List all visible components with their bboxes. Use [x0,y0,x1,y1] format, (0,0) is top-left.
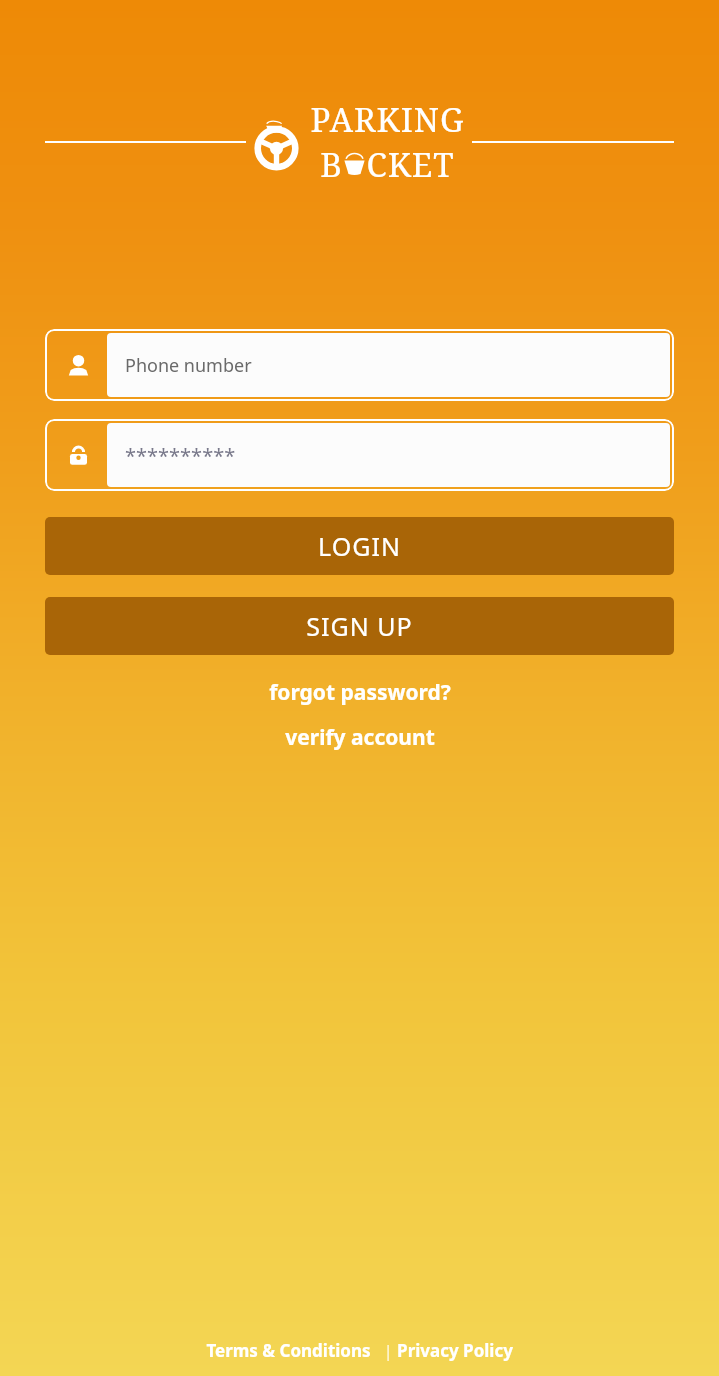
button[interactable]: verify account [0,715,719,760]
staticText: PARKING [310,97,465,142]
button[interactable]: Terms & Conditions [206,1339,371,1362]
staticText: LOGIN [318,529,401,563]
staticText: Privacy Policy [397,1339,513,1362]
staticText: CKET [366,142,455,187]
button[interactable]: forgot password? [0,670,719,715]
button[interactable]: Phone number [45,329,674,401]
button[interactable]: Privacy Policy [397,1339,513,1362]
button[interactable]: LOGIN [45,517,674,575]
button[interactable]: SIGN UP [45,597,674,655]
staticText: Phone number [125,353,252,378]
staticText: forgot password? [269,678,451,707]
staticText: SIGN UP [306,609,413,643]
staticText: verify account [285,723,435,752]
button[interactable]: Password [45,419,674,491]
staticText: B [320,142,343,187]
staticText: | [371,1340,397,1362]
staticText: Terms & Conditions [206,1339,371,1362]
staticText: ********** [125,442,236,469]
